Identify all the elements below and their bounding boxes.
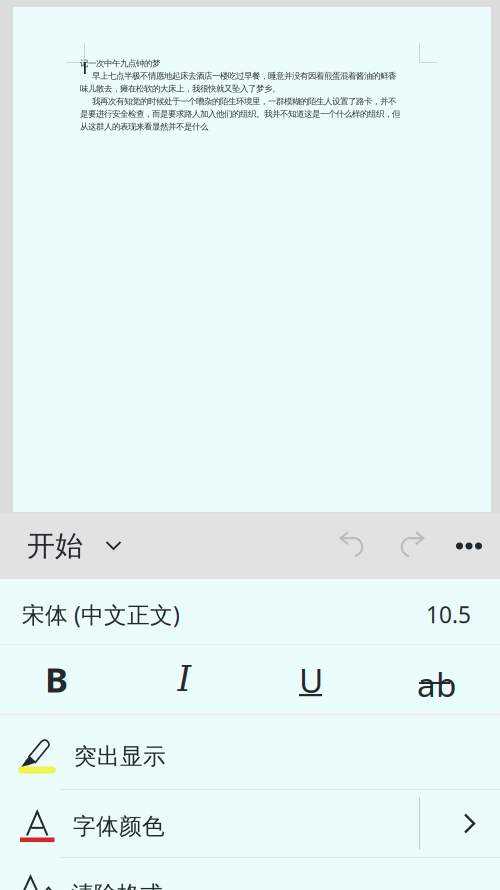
staticText: I	[177, 659, 191, 699]
staticText: 突出显示	[74, 742, 166, 771]
button[interactable]: U	[250, 645, 375, 713]
button[interactable]: Redo	[382, 513, 440, 579]
staticText: 我再次有知觉的时候处于一个嘈杂的陌生环境里，一群模糊的陌生人设置了路卡，并不	[80, 96, 396, 107]
staticText: 味儿散去，瘫在松软的大床上，我很快就又坠入了梦乡。	[80, 83, 280, 94]
button[interactable]: 字体颜色	[0, 790, 500, 857]
staticText: U	[299, 657, 323, 703]
button[interactable]: B	[0, 645, 125, 713]
staticText: 早上七点半极不情愿地起床去酒店一楼吃过早餐，睡意并没有因着煎蛋混着酱油的鲜香	[80, 71, 396, 81]
staticText: 字体颜色	[73, 812, 165, 841]
button[interactable]: 清除格式	[0, 858, 500, 890]
staticText: 宋体 (中文正文)	[22, 599, 180, 630]
button[interactable]: 宋体 (中文正文)	[0, 579, 500, 644]
staticText: 从这群人的表现来看显然并不是什么	[80, 121, 208, 132]
button[interactable]: 突出显示	[0, 716, 500, 789]
button[interactable]: More options	[440, 513, 500, 579]
staticText: ab	[417, 661, 457, 707]
staticText: 10.5	[426, 599, 471, 630]
button[interactable]: ab	[375, 645, 500, 713]
staticText: 清除格式	[71, 880, 163, 890]
staticText: 记一次中午九点钟的梦	[80, 58, 160, 69]
staticText: 开始	[27, 528, 83, 564]
staticText: 是要进行安全检查，而是要求路人加入他们的组织。我并不知道这是一个什么样的组织，但	[80, 109, 400, 119]
button[interactable]: I	[125, 645, 250, 713]
staticText: B	[45, 655, 68, 703]
button[interactable]: Undo	[324, 513, 382, 579]
button[interactable]: 开始	[0, 513, 138, 579]
